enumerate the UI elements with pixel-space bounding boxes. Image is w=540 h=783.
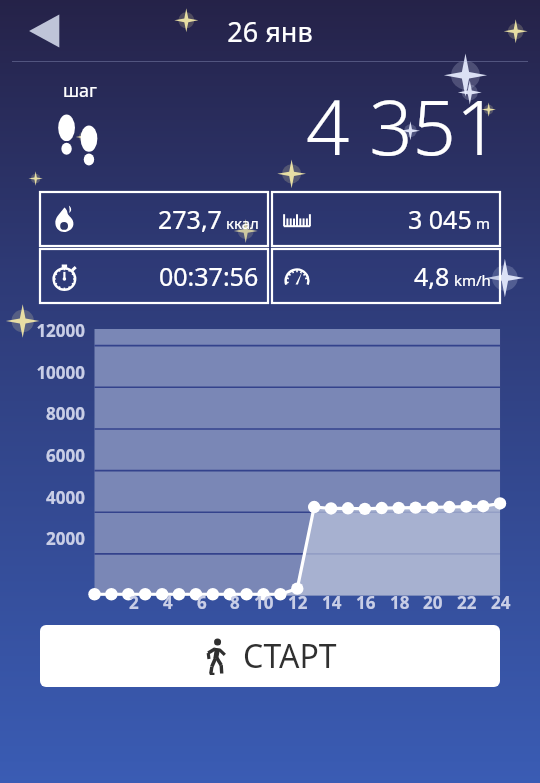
staticText: 24 <box>491 591 511 614</box>
staticText: 10 <box>254 591 274 614</box>
staticText: 16 <box>356 591 376 614</box>
staticText: 6 <box>197 591 207 614</box>
staticText: 8 <box>230 591 240 614</box>
button[interactable]: Calories <box>40 192 268 246</box>
button[interactable]: Speed <box>272 249 500 303</box>
staticText: 3 045 <box>408 202 472 236</box>
staticText: 4000 <box>0 486 85 509</box>
staticText: 14 <box>322 591 342 614</box>
staticText: ккал <box>226 213 259 233</box>
button[interactable]: Duration <box>40 249 268 303</box>
staticText: 12 <box>288 591 308 614</box>
staticText: 2000 <box>0 527 85 550</box>
staticText: СТАРТ <box>243 634 337 678</box>
staticText: 4,8 <box>414 259 450 293</box>
staticText: km/h <box>454 270 491 290</box>
staticText: 20 <box>423 591 443 614</box>
staticText: 273,7 <box>158 202 222 236</box>
staticText: 10000 <box>0 361 85 384</box>
staticText: 8000 <box>0 402 85 425</box>
staticText: 12000 <box>0 319 85 342</box>
staticText: 22 <box>457 591 477 614</box>
staticText: 26 янв <box>227 13 313 50</box>
staticText: 18 <box>390 591 410 614</box>
button[interactable]: СТАРТ <box>40 625 500 687</box>
staticText: 2 <box>129 591 139 614</box>
staticText: 00:37:56 <box>159 259 259 293</box>
staticText: m <box>476 213 491 233</box>
staticText: 4 <box>163 591 173 614</box>
staticText: 6000 <box>0 444 85 467</box>
staticText: шаг <box>63 78 97 103</box>
staticText: 4 351 <box>306 74 500 178</box>
button[interactable]: Distance <box>272 192 500 246</box>
button[interactable]: Back <box>18 5 70 57</box>
